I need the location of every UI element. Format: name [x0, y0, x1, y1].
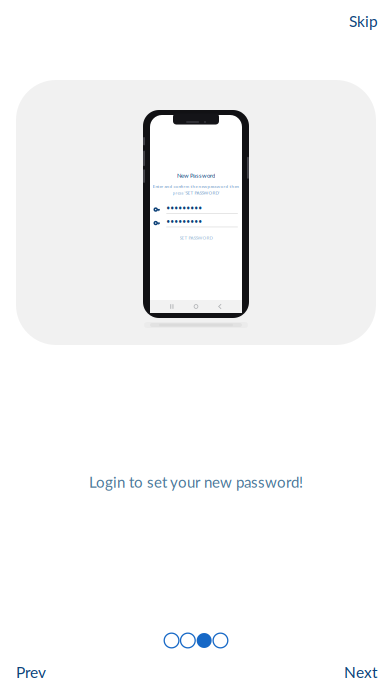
staticText: SET PASSWORD	[179, 235, 212, 240]
staticText: Enter and confirm the new password then	[152, 183, 239, 189]
staticText: press 'SET PASSWORD'	[172, 190, 219, 195]
staticText: Next	[344, 663, 378, 681]
button[interactable]: Next	[314, 652, 378, 692]
button[interactable]: Skip	[314, 1, 378, 41]
staticText: •••••••••	[166, 217, 202, 225]
staticText: Prev	[16, 663, 46, 681]
button[interactable]: Prev	[16, 652, 80, 692]
staticText: •••••••••	[166, 204, 202, 212]
staticText: Skip	[349, 12, 378, 30]
staticText: Login to set your new password!	[89, 473, 303, 491]
staticText: New Password	[177, 172, 215, 179]
